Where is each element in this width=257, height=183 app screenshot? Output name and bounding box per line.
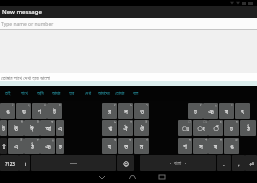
- button[interactable]: ষ: [219, 103, 234, 119]
- button[interactable]: ৎ: [235, 103, 250, 119]
- button[interactable]: [31, 155, 116, 171]
- staticText: ও: [140, 109, 144, 116]
- button[interactable]: র: [102, 103, 117, 119]
- button[interactable]: Home: [126, 171, 138, 183]
- button[interactable]: ঃ: [178, 120, 192, 136]
- button[interactable]: এ: [8, 138, 24, 154]
- staticText: ⏎: [249, 161, 254, 167]
- button[interactable]: সাথে: [16, 86, 32, 101]
- staticText: ?123: [5, 161, 15, 167]
- button[interactable]: ঠ: [240, 120, 256, 136]
- staticText: ং: [197, 126, 205, 133]
- staticText: ☺: [123, 161, 129, 167]
- staticText: ল: [124, 109, 128, 116]
- button[interactable]: তোমার: [112, 86, 128, 101]
- button[interactable]: ঞ: [203, 103, 218, 119]
- staticText: ঽ: [220, 120, 222, 123]
- staticText: ৭: [146, 103, 148, 106]
- staticText: তাই: [5, 91, 11, 96]
- button[interactable]: ট: [47, 103, 62, 119]
- button[interactable]: তাই: [0, 86, 16, 101]
- button[interactable]: ঙ: [224, 138, 239, 154]
- button[interactable]: ☺: [117, 155, 134, 171]
- button[interactable]: বাংলা: [140, 155, 216, 171]
- staticText: শ: [183, 144, 187, 151]
- button[interactable]: .: [217, 155, 231, 171]
- staticText: ৎ: [241, 109, 244, 116]
- button[interactable]: ঁ: [208, 120, 223, 136]
- button[interactable]: ঢ: [224, 120, 239, 136]
- button[interactable]: ।: [19, 155, 30, 171]
- button[interactable]: ণ: [32, 103, 47, 119]
- button[interactable]: ট: [0, 120, 7, 136]
- staticText: ঃ: [182, 126, 189, 133]
- button[interactable]: ঔ: [134, 120, 149, 136]
- button[interactable]: New message: [0, 6, 257, 18]
- button[interactable]: ম: [134, 138, 149, 154]
- staticText: New message: [2, 8, 42, 16]
- staticText: র: [108, 109, 111, 116]
- button[interactable]: ?123: [0, 155, 19, 171]
- staticText: ণ: [146, 138, 148, 141]
- button[interactable]: আমার: [48, 86, 64, 101]
- button[interactable]: ঊ: [8, 120, 24, 136]
- staticText: ষ: [214, 144, 217, 151]
- staticText: ঢ: [194, 109, 197, 116]
- button[interactable]: ঙ: [0, 103, 15, 119]
- staticText: ১: [12, 103, 14, 106]
- button[interactable]: ঈ: [24, 120, 40, 136]
- button[interactable]: ড: [16, 103, 31, 119]
- button[interactable]: তোমার সাথে দেখা হয়ে ভালো: [0, 73, 257, 81]
- button[interactable]: ⏎: [245, 155, 257, 171]
- button[interactable]: ⇧: [0, 138, 7, 154]
- button[interactable]: ঞ: [40, 138, 55, 154]
- staticText: ⇧: [1, 143, 7, 151]
- staticText: ঌ: [114, 120, 116, 123]
- button[interactable]: ং: [193, 120, 208, 136]
- button[interactable]: ও: [134, 103, 149, 119]
- button[interactable]: দেখা: [80, 86, 96, 101]
- staticText: ঊ: [14, 126, 18, 133]
- button[interactable]: Recents: [156, 171, 168, 183]
- button[interactable]: চ: [56, 138, 64, 154]
- button[interactable]: বলে: [128, 86, 144, 101]
- staticText: ২: [28, 103, 30, 106]
- button[interactable]: য: [102, 138, 117, 154]
- button[interactable]: ঠ: [24, 138, 40, 154]
- staticText: ঝ: [114, 138, 116, 141]
- staticText: ষ: [189, 138, 191, 141]
- button[interactable]: ঋ: [102, 120, 117, 136]
- staticText: এ: [14, 144, 18, 151]
- staticText: ৮: [200, 103, 202, 106]
- button[interactable]: আমাদের: [96, 86, 112, 101]
- button[interactable]: স: [193, 138, 208, 154]
- button[interactable]: ল: [118, 103, 133, 119]
- button[interactable]: ,: [232, 155, 245, 171]
- staticText: ৬: [130, 103, 132, 106]
- staticText: ড: [22, 109, 26, 116]
- staticText: ভ: [124, 144, 128, 151]
- button[interactable]: Back: [96, 171, 108, 183]
- staticText: ঐ: [123, 126, 128, 133]
- button[interactable]: শ: [178, 138, 192, 154]
- staticText: ঈ: [30, 126, 34, 133]
- button[interactable]: এ: [56, 120, 64, 136]
- staticText: এ: [58, 126, 62, 133]
- button[interactable]: Type name or number: [0, 18, 257, 30]
- button[interactable]: ষ: [208, 138, 223, 154]
- button[interactable]: ঐ: [118, 120, 133, 136]
- staticText: .: [223, 161, 225, 168]
- staticText: য: [108, 144, 111, 151]
- staticText: Type name or number: [1, 21, 54, 28]
- staticText: ৩: [44, 103, 46, 106]
- staticText: আমাদের: [98, 91, 110, 96]
- staticText: ঞ: [45, 144, 51, 151]
- button[interactable]: হয়ে: [64, 86, 80, 101]
- button[interactable]: ঢ: [188, 103, 203, 119]
- button[interactable]: ভ: [118, 138, 133, 154]
- staticText: ঞ: [235, 138, 238, 141]
- staticText: ই: [37, 120, 39, 123]
- staticText: ০: [231, 103, 233, 106]
- button[interactable]: আমি: [32, 86, 48, 101]
- button[interactable]: আ: [40, 120, 55, 136]
